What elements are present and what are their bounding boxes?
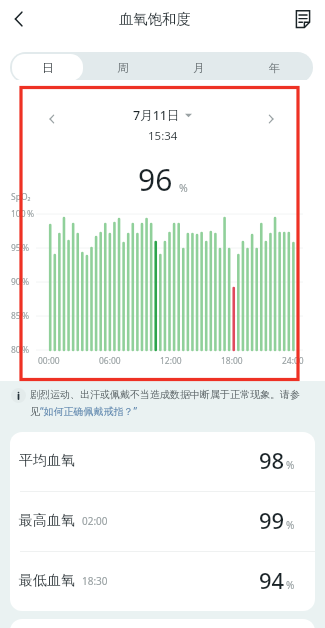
staticText: % [286,578,295,592]
staticText: 80 [11,344,21,356]
button[interactable]: 月 [163,54,235,81]
staticText: % [286,458,295,472]
staticText: 00:00 [38,355,60,367]
staticText: 94 [259,565,285,595]
button[interactable]: Previous day [39,106,65,132]
button[interactable]: Records [288,4,318,34]
button[interactable]: Back [4,4,34,34]
staticText: 06:00 [99,355,121,367]
button[interactable]: 周 [87,54,159,81]
button[interactable]: 年 [239,54,311,81]
staticText: 18:00 [221,355,243,367]
staticText: 95 [11,242,21,254]
button[interactable]: Next day [258,106,284,132]
staticText: % [22,276,30,288]
staticText: 月 [193,61,205,75]
staticText: 18:30 [82,574,108,588]
staticText: % [22,344,30,356]
staticText: 98 [259,445,285,475]
staticText: 12:00 [160,355,182,367]
staticText: 85 [11,310,21,322]
staticText: SpO₂ [11,191,31,203]
staticText: % [22,310,30,322]
staticText: 剧烈运动、出汗或佩戴不当造成数据中断属于正常现象。请参见“如何正确佩戴戒指？” [30,388,313,418]
button[interactable]: 最低血氧 [10,552,315,611]
staticText: 年 [269,61,281,75]
staticText: 日 [42,61,54,75]
staticText: 平均血氧 [19,452,75,470]
staticText: 24:00 [282,355,304,367]
staticText: 最高血氧 [19,512,75,530]
staticText: % [179,181,188,195]
button[interactable]: 平均血氧 [10,432,315,491]
staticText: 7月11日 [133,107,180,124]
staticText: 99 [259,505,285,535]
staticText: 100 [11,208,26,220]
staticText: 90 [11,276,21,288]
staticText: 周 [117,61,129,75]
staticText: 最低血氧 [19,572,75,590]
staticText: % [286,518,295,532]
staticText: 02:00 [82,514,108,528]
staticText: 96 [138,159,173,200]
staticText: 15:34 [148,128,178,144]
button[interactable]: 7月11日 [133,107,192,124]
button[interactable]: 日 [12,54,83,81]
staticText: 血氧饱和度 [119,10,191,28]
staticText: % [27,208,35,220]
staticText: % [22,242,30,254]
button[interactable]: 最高血氧 [10,492,315,551]
